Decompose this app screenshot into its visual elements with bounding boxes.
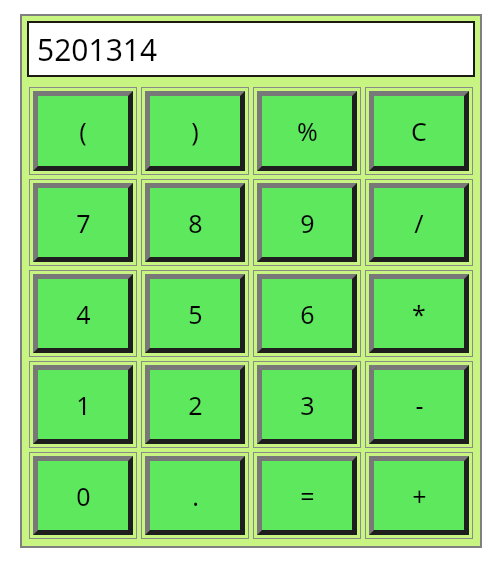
button[interactable]: 5	[145, 274, 245, 353]
button[interactable]: (	[33, 91, 133, 171]
staticText: 4	[76, 297, 91, 331]
button[interactable]: 1	[33, 365, 133, 444]
button[interactable]: 2	[145, 365, 245, 444]
staticText: 1	[76, 388, 91, 422]
staticText: =	[300, 479, 315, 513]
button[interactable]: 6	[257, 274, 357, 353]
staticText: %	[297, 114, 318, 148]
button[interactable]: 4	[33, 274, 133, 353]
staticText: 5	[188, 297, 203, 331]
button[interactable]: *	[369, 274, 469, 353]
staticText: 0	[76, 479, 91, 513]
button[interactable]: %	[257, 91, 357, 171]
button[interactable]: 7	[33, 183, 133, 262]
button[interactable]: +	[369, 456, 469, 535]
staticText: C	[411, 114, 427, 148]
button[interactable]: -	[369, 365, 469, 444]
staticText: 9	[300, 206, 315, 240]
staticText: 2	[188, 388, 203, 422]
staticText: 7	[76, 206, 91, 240]
button[interactable]: 8	[145, 183, 245, 262]
staticText: 8	[188, 206, 203, 240]
button[interactable]: 9	[257, 183, 357, 262]
button[interactable]: )	[145, 91, 245, 171]
button[interactable]: 3	[257, 365, 357, 444]
staticText: 3	[300, 388, 315, 422]
staticText: 6	[300, 297, 315, 331]
staticText: (	[79, 114, 87, 148]
staticText: )	[191, 114, 199, 148]
button[interactable]: 5201314	[27, 21, 475, 77]
staticText: *	[412, 297, 426, 331]
button[interactable]: C	[369, 91, 469, 171]
button[interactable]: .	[145, 456, 245, 535]
staticText: .	[192, 479, 199, 513]
staticText: -	[415, 388, 424, 422]
button[interactable]: =	[257, 456, 357, 535]
staticText: /	[414, 206, 424, 240]
staticText: +	[412, 479, 427, 513]
button[interactable]: 0	[33, 456, 133, 535]
staticText: 5201314	[37, 29, 158, 70]
button[interactable]: /	[369, 183, 469, 262]
